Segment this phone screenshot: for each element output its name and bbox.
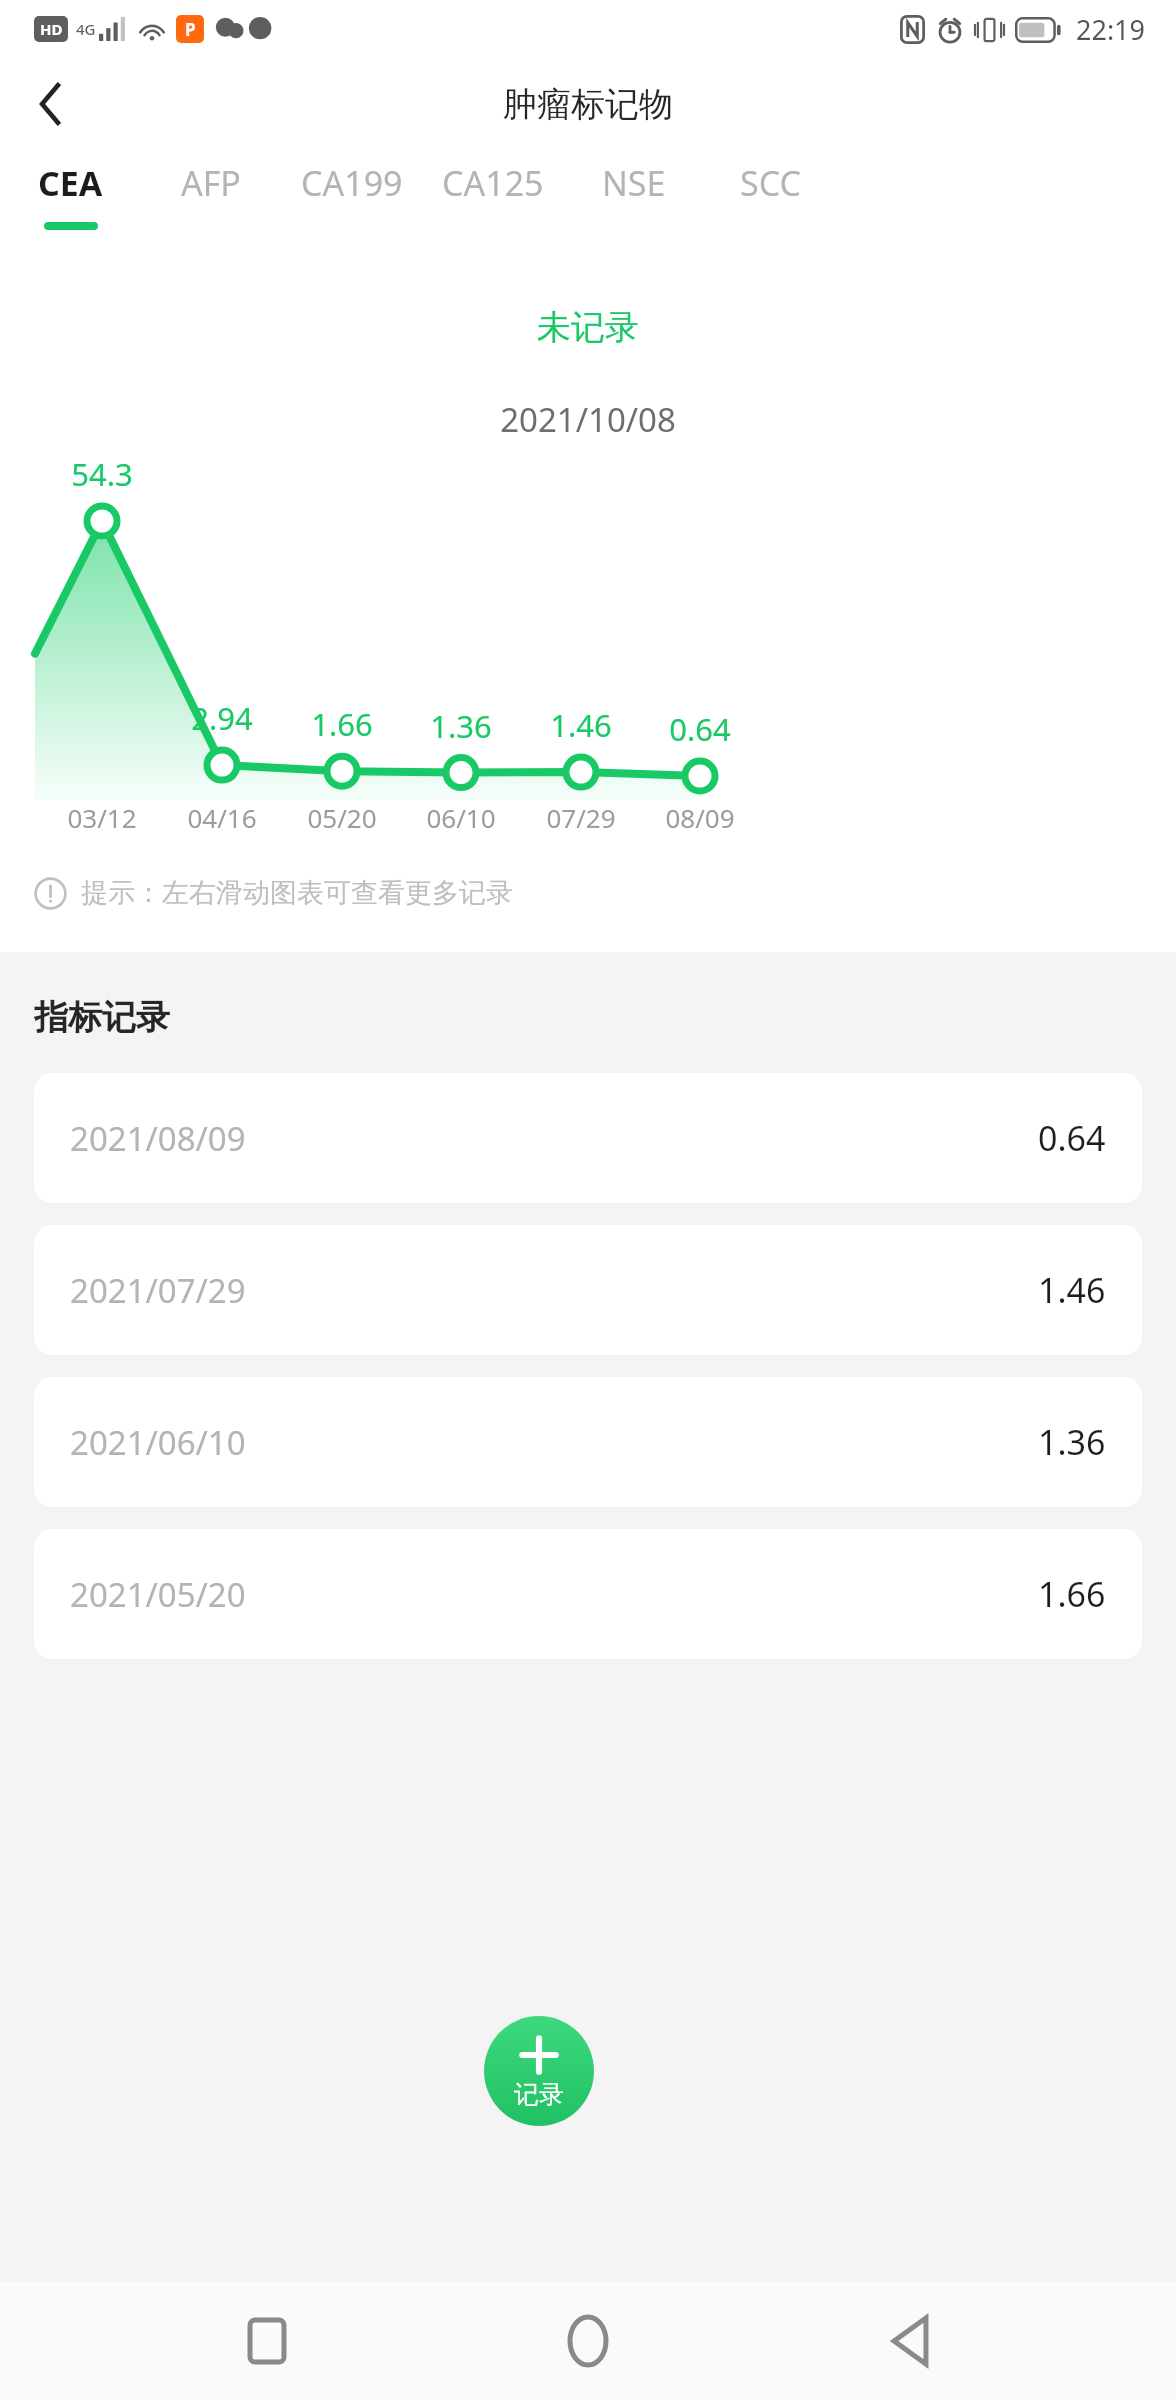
staticText: 54.3 <box>71 453 133 495</box>
staticText: 0.64 <box>1038 1115 1106 1161</box>
staticText: 未记录 <box>0 306 1176 349</box>
staticText: 2021/08/09 <box>70 1116 246 1161</box>
staticText: 1.36 <box>1038 1419 1106 1465</box>
staticText: 03/12 <box>67 800 137 835</box>
button[interactable]: AFP <box>141 150 281 250</box>
staticText: 1.46 <box>1038 1267 1106 1313</box>
button[interactable]: 2021/06/10 <box>34 1377 1142 1507</box>
staticText: P <box>185 18 196 41</box>
staticText: 1.66 <box>311 703 373 745</box>
staticText: 04/16 <box>187 800 257 835</box>
staticText: 4G <box>76 19 96 39</box>
staticText: 2021/05/20 <box>70 1572 246 1617</box>
staticText: 2.94 <box>191 697 253 739</box>
staticText: HD <box>40 19 63 39</box>
staticText: CEA <box>38 160 103 206</box>
button[interactable]: 2021/08/09 <box>34 1073 1142 1203</box>
staticText: NSE <box>602 160 666 206</box>
button[interactable]: 记录 <box>484 2016 594 2126</box>
button[interactable]: Recents <box>212 2286 322 2396</box>
staticText: 记录 <box>514 2079 564 2110</box>
button[interactable]: CA199 <box>282 150 422 250</box>
button[interactable]: CEA <box>0 150 140 250</box>
button[interactable]: Back <box>8 62 92 146</box>
staticText: 1.66 <box>1038 1571 1106 1617</box>
staticText: 0.64 <box>669 708 731 750</box>
button[interactable]: Back <box>855 2286 965 2396</box>
button[interactable]: SCC <box>700 150 840 250</box>
button[interactable]: CA125 <box>423 150 563 250</box>
staticText: 06/10 <box>426 800 496 835</box>
staticText: CA199 <box>301 160 403 206</box>
button[interactable]: NSE <box>564 150 704 250</box>
staticText: 2021/10/08 <box>0 397 1176 442</box>
staticText: 指标记录 <box>34 996 170 1039</box>
button[interactable]: 2021/05/20 <box>34 1529 1142 1659</box>
staticText: 22:19 <box>1076 11 1146 48</box>
staticText: 提示：左右滑动图表可查看更多记录 <box>81 876 513 910</box>
staticText: 1.36 <box>430 705 492 747</box>
button[interactable]: 2021/07/29 <box>34 1225 1142 1355</box>
staticText: AFP <box>181 160 241 206</box>
staticText: 1.46 <box>550 704 612 746</box>
button[interactable]: Home <box>533 2286 643 2396</box>
staticText: CA125 <box>442 160 544 206</box>
staticText: 2021/06/10 <box>70 1420 246 1465</box>
staticText: SCC <box>740 160 801 206</box>
staticText: 07/29 <box>546 800 616 835</box>
staticText: 05/20 <box>307 800 377 835</box>
staticText: 肿瘤标记物 <box>503 83 673 126</box>
staticText: 2021/07/29 <box>70 1268 246 1313</box>
staticText: 08/09 <box>665 800 735 835</box>
